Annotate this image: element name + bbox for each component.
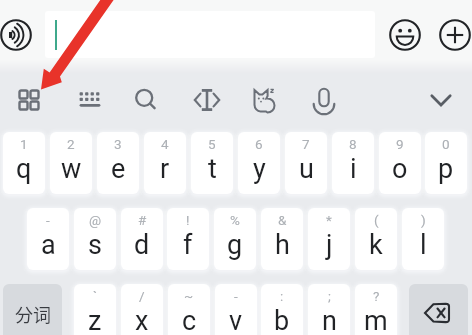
staticText: 0 — [442, 136, 450, 152]
button[interactable]: 2 — [50, 132, 92, 194]
staticText: # — [138, 212, 147, 228]
staticText: 8 — [349, 136, 357, 152]
button[interactable]: & — [261, 208, 303, 270]
staticText: 3 — [114, 136, 122, 152]
staticText: 1 — [20, 136, 28, 152]
button[interactable]: * — [308, 208, 350, 270]
staticText: d — [134, 229, 150, 261]
staticText: s — [88, 229, 102, 261]
button[interactable]: 7 — [285, 132, 327, 194]
button[interactable]: Backspace — [409, 284, 468, 335]
button[interactable]: 分词 — [3, 284, 62, 335]
staticText: y — [253, 153, 266, 185]
button[interactable]: 1 — [3, 132, 45, 194]
staticText: i — [350, 153, 357, 185]
button[interactable]: - — [27, 208, 69, 270]
button[interactable]: ; — [308, 284, 350, 335]
staticText: p — [438, 153, 454, 185]
staticText: 5 — [208, 136, 216, 152]
button[interactable]: 0 — [425, 132, 467, 194]
button[interactable]: Voice — [302, 80, 346, 120]
button[interactable]: ~ — [168, 284, 210, 335]
staticText: f — [183, 229, 193, 261]
staticText: 9 — [396, 136, 404, 152]
staticText: x — [135, 305, 149, 335]
button[interactable]: @ — [74, 208, 116, 270]
staticText: j — [326, 229, 333, 261]
staticText: v — [229, 305, 243, 335]
button[interactable]: % — [214, 208, 256, 270]
staticText: n — [322, 305, 337, 335]
button[interactable]: Voice input — [0, 19, 32, 51]
staticText: ( — [374, 212, 379, 228]
staticText: ) — [421, 212, 426, 228]
staticText: g — [227, 229, 243, 261]
staticText: @ — [89, 212, 102, 228]
staticText: 6 — [255, 136, 263, 152]
staticText: q — [16, 153, 32, 185]
staticText: - — [234, 288, 238, 304]
staticText: b — [274, 305, 290, 335]
button[interactable] — [45, 11, 375, 58]
staticText: 7 — [302, 136, 310, 152]
staticText: c — [182, 305, 197, 335]
button[interactable]: / — [121, 284, 163, 335]
staticText: r — [160, 153, 170, 185]
staticText: ` — [93, 288, 98, 304]
staticText: ! — [186, 212, 190, 228]
button[interactable]: ! — [167, 208, 209, 270]
staticText: l — [420, 229, 427, 261]
staticText: ? — [373, 288, 380, 304]
button[interactable]: : — [261, 284, 303, 335]
staticText: / — [139, 288, 145, 304]
button[interactable]: Hide keyboard — [419, 80, 463, 120]
staticText: a — [41, 229, 56, 261]
button[interactable]: ) — [402, 208, 444, 270]
button[interactable]: Add — [439, 19, 471, 51]
staticText: u — [299, 153, 314, 185]
staticText: e — [111, 153, 126, 185]
button[interactable]: ` — [74, 284, 116, 335]
staticText: & — [278, 212, 287, 228]
button[interactable]: 4 — [144, 132, 186, 194]
button[interactable]: 3 — [97, 132, 139, 194]
staticText: 2 — [67, 136, 75, 152]
button[interactable]: Keyboard — [68, 80, 112, 120]
staticText: t — [208, 153, 217, 185]
staticText: z — [88, 305, 102, 335]
button[interactable]: Stickers — [242, 80, 286, 120]
button[interactable]: Search — [124, 80, 168, 120]
button[interactable]: - — [215, 284, 257, 335]
staticText: ~ — [184, 288, 194, 304]
button[interactable]: ( — [355, 208, 397, 270]
button[interactable]: 6 — [238, 132, 280, 194]
button[interactable]: 8 — [332, 132, 374, 194]
staticText: * — [326, 212, 332, 228]
staticText: 分词 — [15, 301, 51, 327]
staticText: - — [46, 212, 50, 228]
staticText: ; — [328, 288, 331, 304]
button[interactable]: Move cursor — [185, 80, 229, 120]
staticText: % — [230, 212, 240, 228]
button[interactable]: 5 — [191, 132, 233, 194]
staticText: : — [280, 288, 284, 304]
button[interactable]: Emoji — [389, 19, 421, 51]
button[interactable]: # — [121, 208, 163, 270]
staticText: m — [364, 305, 388, 335]
staticText: k — [369, 229, 383, 261]
staticText: o — [392, 153, 408, 185]
staticText: h — [275, 229, 290, 261]
staticText: 4 — [161, 136, 169, 152]
button[interactable]: 9 — [379, 132, 421, 194]
button[interactable]: ? — [355, 284, 397, 335]
button[interactable]: Panel — [7, 80, 51, 120]
staticText: w — [61, 153, 82, 185]
